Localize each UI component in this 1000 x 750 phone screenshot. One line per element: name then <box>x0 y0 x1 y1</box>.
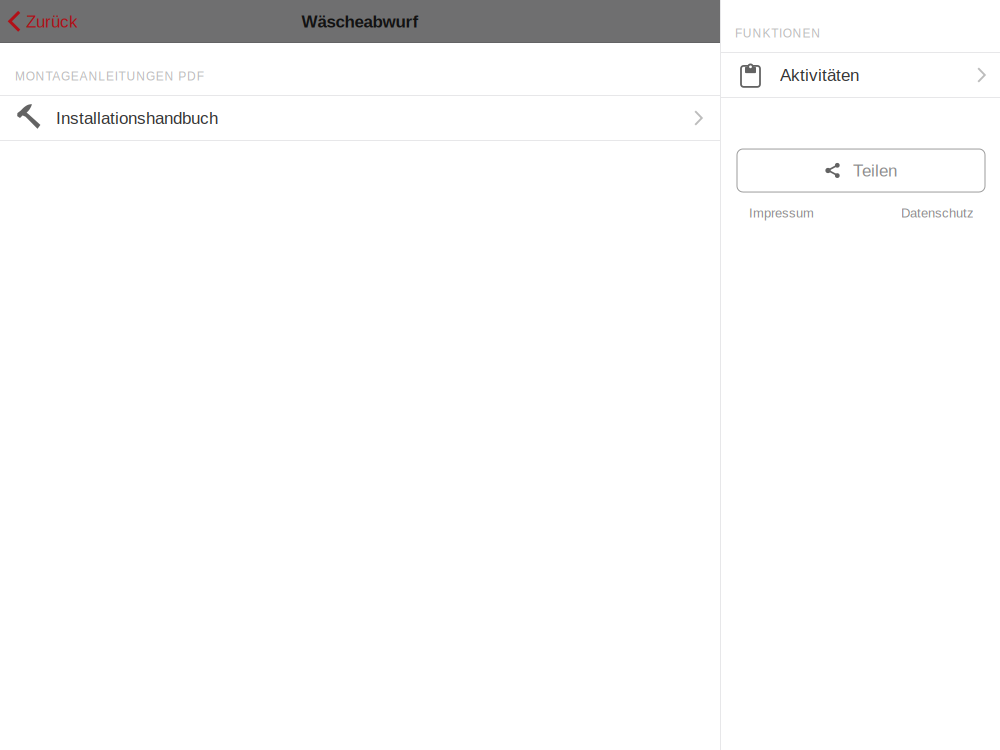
staticText: Zurück <box>26 12 78 31</box>
button[interactable]: Datenschutz <box>891 200 985 226</box>
button[interactable]: Aktivitäten <box>721 53 1000 97</box>
staticText: Datenschutz <box>901 206 974 220</box>
button[interactable]: Impressum <box>737 200 824 226</box>
button[interactable]: Teilen <box>737 149 985 192</box>
staticText: FUNKTIONEN <box>735 27 820 40</box>
staticText: Impressum <box>749 206 814 220</box>
staticText: MONTAGEANLEITUNGEN PDF <box>15 70 204 83</box>
button[interactable]: Zurück <box>0 0 90 43</box>
staticText: Wäscheabwurf <box>301 12 418 31</box>
staticText: Teilen <box>853 161 897 180</box>
staticText: Aktivitäten <box>780 65 859 84</box>
button[interactable]: Installationshandbuch <box>0 96 720 140</box>
staticText: Installationshandbuch <box>56 108 218 127</box>
